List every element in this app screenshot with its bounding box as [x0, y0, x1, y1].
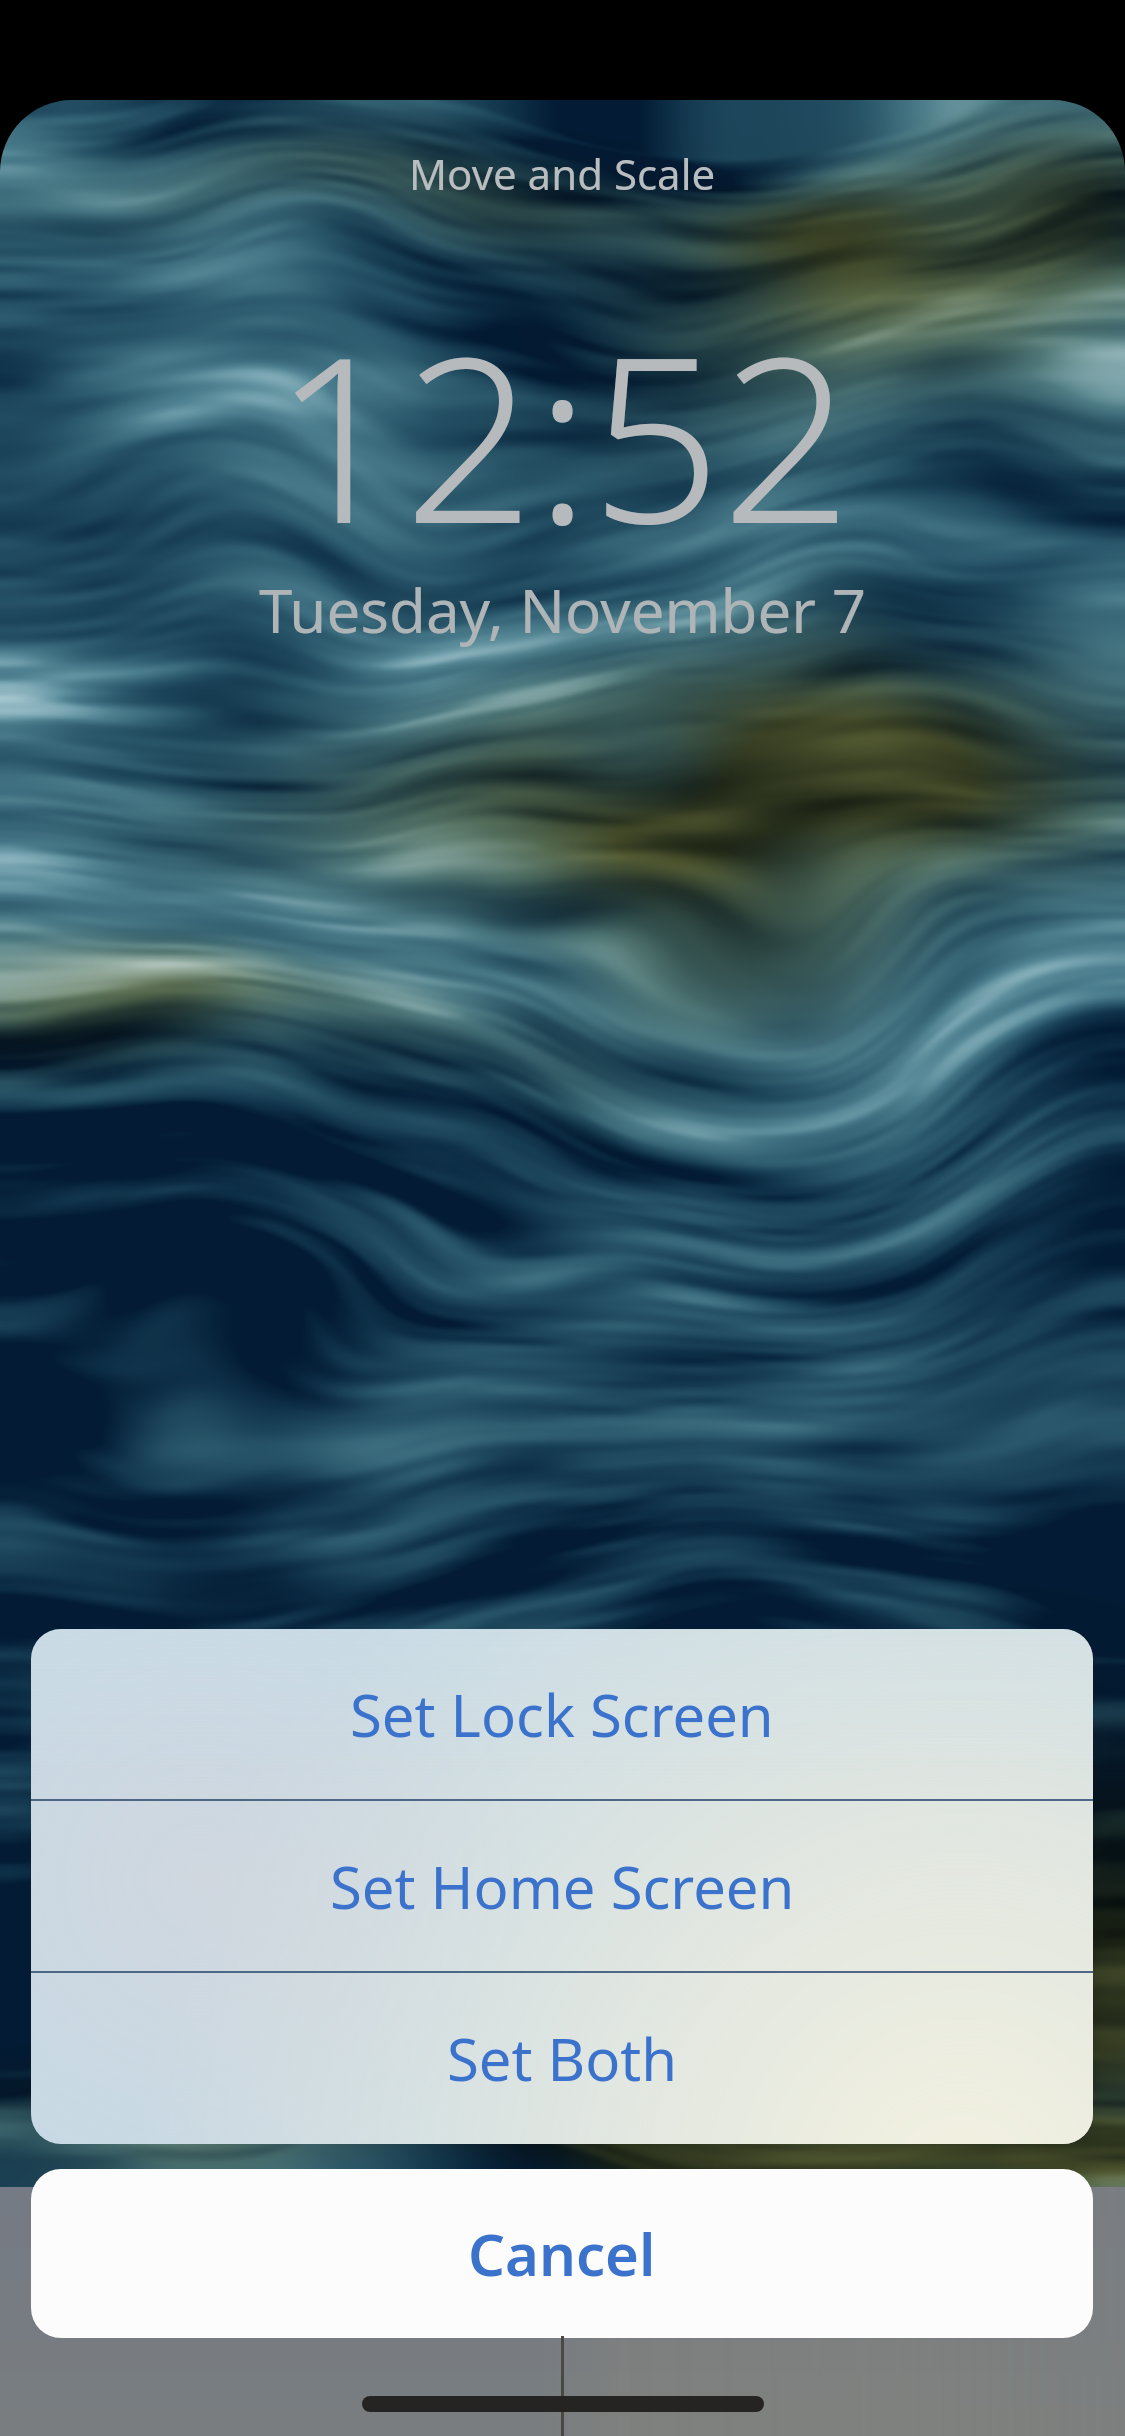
- staticText: Cancel: [468, 2214, 656, 2293]
- button[interactable]: Set Both: [31, 1973, 1093, 2143]
- staticText: Tuesday, November 7: [259, 569, 867, 651]
- staticText: Set Lock Screen: [350, 1675, 774, 1754]
- button[interactable]: Set Lock Screen: [31, 1629, 1093, 1799]
- button[interactable]: Cancel: [31, 2169, 1093, 2338]
- staticText: Set Both: [447, 2019, 678, 2098]
- button[interactable]: Set Home Screen: [31, 1801, 1093, 1971]
- staticText: Move and Scale: [409, 145, 716, 202]
- staticText: Set Home Screen: [330, 1847, 795, 1926]
- staticText: 12:52: [273, 278, 852, 590]
